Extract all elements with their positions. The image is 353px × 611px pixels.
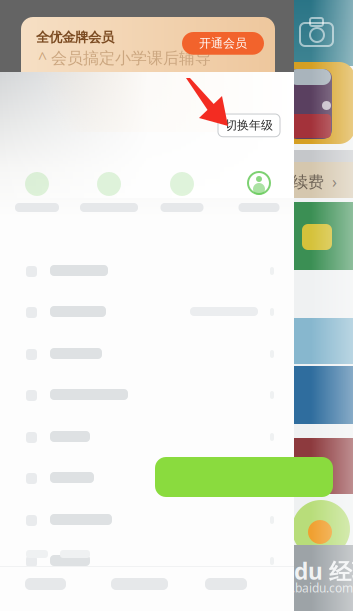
button[interactable]: 开通会员 xyxy=(182,32,264,55)
staticText: 开通会员 xyxy=(199,36,247,51)
staticText: 全优金牌会员 xyxy=(36,29,114,45)
button[interactable]: 切换年级 xyxy=(218,114,280,137)
staticText: Baidu 经验 xyxy=(258,556,353,586)
staticText: jingyan.baidu.com xyxy=(252,580,353,596)
staticText: 切换年级 xyxy=(225,118,273,133)
staticText: 续费 › xyxy=(292,171,337,192)
staticText: ^ 会员搞定小学课后辅导 xyxy=(38,47,211,68)
